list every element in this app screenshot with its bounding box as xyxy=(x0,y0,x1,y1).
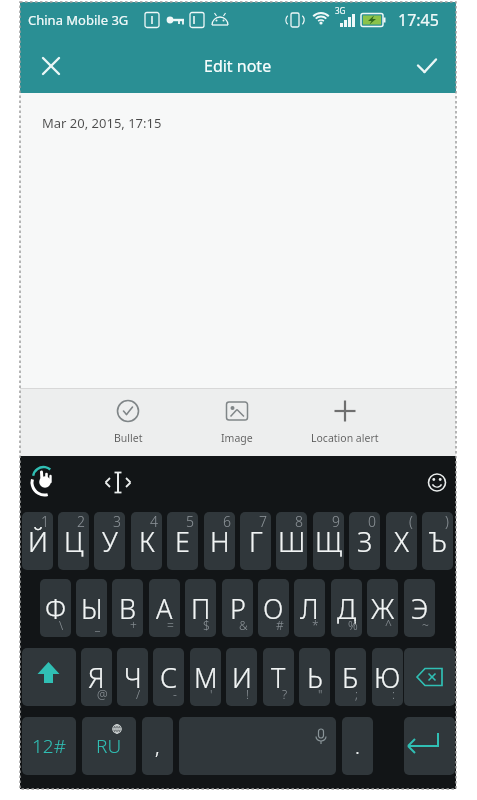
button[interactable]: И xyxy=(226,648,257,706)
button[interactable]: О xyxy=(258,579,289,637)
staticText: 4 xyxy=(150,512,158,531)
staticText: 7 xyxy=(259,512,267,531)
button[interactable]: Я xyxy=(81,648,112,706)
staticText: Я xyxy=(88,659,105,696)
button[interactable]: Ю xyxy=(372,648,403,706)
button[interactable] xyxy=(187,395,287,450)
staticText: 3G xyxy=(335,5,346,16)
staticText: У xyxy=(102,523,118,560)
button[interactable]: С xyxy=(153,648,184,706)
button[interactable] xyxy=(406,45,448,87)
staticText: . xyxy=(355,733,360,760)
button[interactable] xyxy=(22,648,76,706)
staticText: China Mobile 3G xyxy=(28,11,129,29)
button[interactable]: Ф xyxy=(40,579,71,637)
button[interactable]: М xyxy=(190,648,221,706)
staticText: % xyxy=(348,617,358,633)
staticText: О xyxy=(263,590,284,627)
staticText: 6 xyxy=(223,512,231,531)
staticText: + xyxy=(130,617,137,633)
staticText: @ xyxy=(97,686,108,702)
button[interactable] xyxy=(179,717,336,775)
button[interactable]: Ч xyxy=(117,648,148,706)
button[interactable] xyxy=(98,462,138,502)
button[interactable]: Й xyxy=(22,512,53,570)
staticText: ; xyxy=(355,686,358,702)
button[interactable]: Х xyxy=(386,512,417,570)
staticText: = xyxy=(167,617,174,633)
button[interactable]: Щ xyxy=(313,512,344,570)
staticText: Ь xyxy=(307,659,323,696)
button[interactable]: 12# xyxy=(22,717,76,775)
staticText: 3 xyxy=(113,512,121,531)
staticText: Э xyxy=(411,590,429,627)
button[interactable]: Б xyxy=(335,648,366,706)
button[interactable]: Ш xyxy=(276,512,307,570)
staticText: 17:45 xyxy=(398,9,439,31)
button[interactable]: З xyxy=(349,512,380,570)
staticText: М xyxy=(194,659,218,696)
staticText: Л xyxy=(300,590,319,627)
button[interactable] xyxy=(404,717,455,775)
button[interactable] xyxy=(28,462,68,502)
button[interactable]: Л xyxy=(294,579,325,637)
button[interactable]: . xyxy=(342,717,373,775)
button[interactable]: В xyxy=(112,579,143,637)
button[interactable] xyxy=(295,395,395,450)
staticText: - xyxy=(173,686,177,702)
button[interactable]: К xyxy=(131,512,162,570)
staticText: П xyxy=(191,590,211,627)
staticText: * xyxy=(312,617,319,633)
staticText: ' xyxy=(210,686,213,702)
button[interactable]: Е xyxy=(167,512,198,570)
staticText: Mar 20, 2015, 17:15 xyxy=(42,114,162,132)
button[interactable]: П xyxy=(185,579,216,637)
staticText: Location alert xyxy=(311,431,379,445)
button[interactable] xyxy=(30,45,72,87)
button[interactable]: Э xyxy=(404,579,435,637)
button[interactable] xyxy=(78,395,178,450)
staticText: 1 xyxy=(41,512,49,531)
staticText: Б xyxy=(342,659,359,696)
staticText: Щ xyxy=(315,523,343,560)
button[interactable]: Ъ xyxy=(422,512,453,570)
button[interactable]: А xyxy=(149,579,180,637)
staticText: ~ xyxy=(422,617,429,633)
staticText: 8 xyxy=(295,512,303,531)
button[interactable]: Ж xyxy=(367,579,398,637)
staticText: Р xyxy=(230,590,246,627)
button[interactable]: Д xyxy=(331,579,362,637)
staticText: В xyxy=(119,590,137,627)
staticText: " xyxy=(318,686,323,702)
button[interactable]: Т xyxy=(263,648,294,706)
staticText: Г xyxy=(249,523,263,560)
staticText: З xyxy=(357,523,373,560)
button[interactable]: Ь xyxy=(299,648,330,706)
staticText: А xyxy=(156,590,173,627)
button[interactable] xyxy=(417,462,457,502)
button[interactable]: Ц xyxy=(58,512,89,570)
button[interactable]: Г xyxy=(240,512,271,570)
staticText: Ы xyxy=(81,590,103,627)
staticText: 9 xyxy=(332,512,340,531)
staticText: Ъ xyxy=(429,523,447,560)
staticText: \ xyxy=(59,617,64,633)
staticText: 2 xyxy=(77,512,85,531)
button[interactable]: , xyxy=(142,717,173,775)
button[interactable]: Р xyxy=(222,579,253,637)
staticText: Ц xyxy=(64,523,84,560)
button[interactable] xyxy=(404,648,455,706)
button[interactable]: Н xyxy=(204,512,235,570)
staticText: Ш xyxy=(278,523,306,560)
staticText: С xyxy=(160,659,178,696)
button[interactable]: У xyxy=(94,512,125,570)
staticText: Edit note xyxy=(204,55,272,77)
button[interactable]: RU xyxy=(82,717,136,775)
staticText: И xyxy=(232,659,252,696)
staticText: & xyxy=(239,617,248,633)
staticText: Е xyxy=(175,523,190,560)
button[interactable]: Ы xyxy=(76,579,107,637)
staticText: ! xyxy=(246,686,249,702)
staticText: Ч xyxy=(124,659,142,696)
staticText: 5 xyxy=(186,512,194,531)
